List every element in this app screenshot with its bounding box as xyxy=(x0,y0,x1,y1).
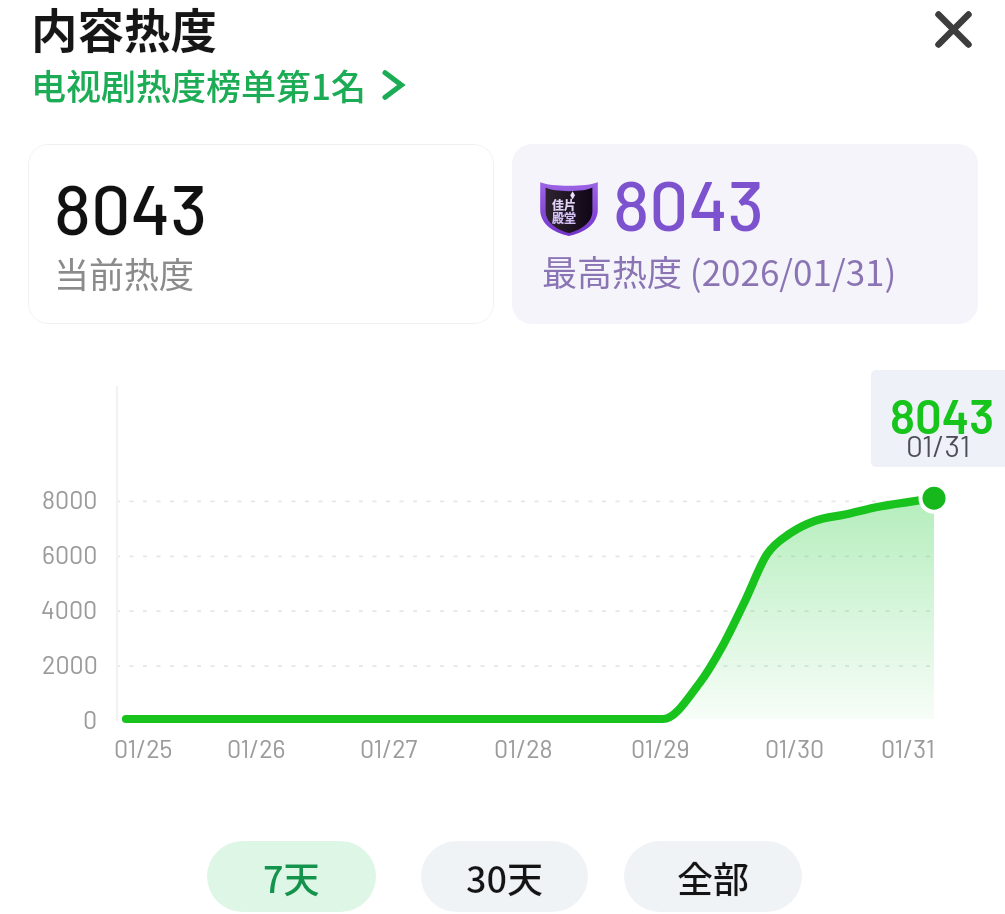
staticText: 01/29 xyxy=(631,733,690,763)
staticText: 8043 xyxy=(613,162,764,245)
staticText: 电视剧热度榜单第1名 xyxy=(31,59,366,110)
staticText: 全部 xyxy=(677,851,750,903)
button[interactable]: 7天 xyxy=(207,841,376,912)
staticText: 2000 xyxy=(42,649,98,679)
staticText: 殿堂 xyxy=(552,209,577,226)
staticText: 当前热度 xyxy=(54,247,195,298)
staticText: 01/31 xyxy=(881,733,935,763)
staticText: 01/26 xyxy=(227,733,286,763)
button[interactable]: 内容热度 xyxy=(31,0,217,61)
staticText: 01/27 xyxy=(360,733,418,763)
staticText: 01/31 xyxy=(906,427,971,463)
staticText: 01/30 xyxy=(765,733,825,763)
button[interactable]: 电视剧热度榜单第1名 xyxy=(31,59,404,110)
button[interactable]: 8043 xyxy=(28,144,494,324)
button[interactable]: 佳片 xyxy=(512,144,978,324)
button[interactable]: 全部 xyxy=(624,841,802,912)
button[interactable]: 30天 xyxy=(421,841,588,912)
staticText: 8043 xyxy=(54,165,208,249)
staticText: 6000 xyxy=(42,539,98,569)
staticText: 30天 xyxy=(466,851,544,903)
staticText: 7天 xyxy=(263,851,320,903)
staticText: 最高热度 (2026/01/31) xyxy=(542,245,897,296)
staticText: 8043 xyxy=(890,387,995,443)
staticText: 0 xyxy=(83,704,98,734)
staticText: 内容热度 xyxy=(31,0,217,61)
staticText: 01/28 xyxy=(494,733,553,763)
staticText: 佳片 xyxy=(552,196,577,213)
staticText: 01/25 xyxy=(114,733,173,763)
button[interactable]: Close xyxy=(922,0,984,60)
staticText: 4000 xyxy=(41,594,98,624)
staticText: 8000 xyxy=(42,484,98,514)
